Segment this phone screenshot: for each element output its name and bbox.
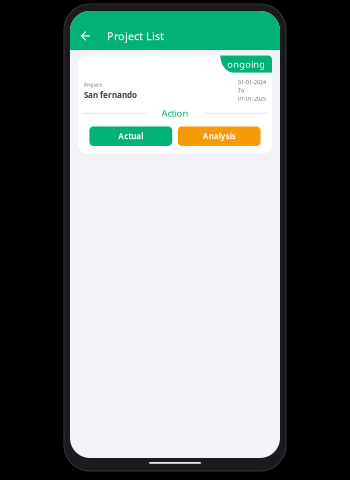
button[interactable]: Analysis: [178, 126, 261, 146]
staticText: Action: [161, 107, 188, 119]
staticText: Actual: [118, 131, 143, 141]
staticText: San fernando: [84, 90, 137, 100]
staticText: Project List: [107, 29, 164, 43]
staticText: 01-01-2025: [238, 95, 266, 102]
staticText: Project: [84, 81, 102, 88]
staticText: ongoing: [227, 58, 265, 70]
staticText: Analysis: [203, 131, 236, 141]
button[interactable]: Actual: [89, 126, 172, 146]
staticText: To: [238, 87, 244, 94]
staticText: 01-01-2024: [238, 79, 266, 86]
button[interactable]: Back: [75, 22, 96, 50]
